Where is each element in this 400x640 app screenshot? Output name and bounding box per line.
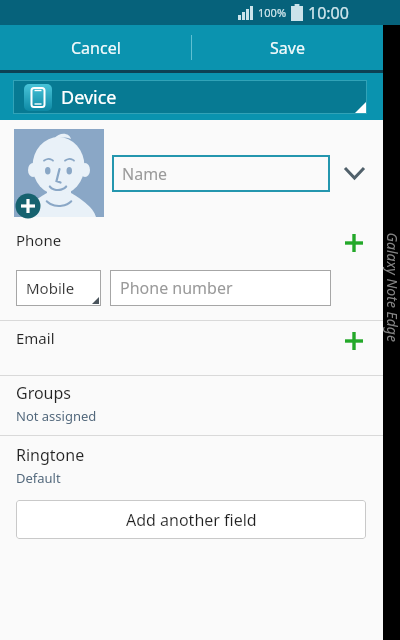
staticText: 100% xyxy=(258,5,287,20)
staticText: Phone number xyxy=(120,277,233,299)
button[interactable]: Add another field xyxy=(16,500,366,539)
staticText: Save xyxy=(270,37,305,59)
button[interactable] xyxy=(344,331,364,351)
staticText: Add another field xyxy=(126,509,257,531)
staticText: Cancel xyxy=(71,37,121,59)
staticText: Not assigned xyxy=(16,407,97,425)
staticText: Groups xyxy=(16,382,72,404)
staticText: Galaxy Note Edge xyxy=(382,232,400,432)
button[interactable]: Ringtone xyxy=(16,444,383,487)
button[interactable] xyxy=(344,167,365,179)
staticText: Device xyxy=(61,85,117,110)
staticText: Ringtone xyxy=(16,444,85,466)
button[interactable]: Groups xyxy=(16,382,383,425)
button[interactable]: Phone number xyxy=(110,270,331,306)
button[interactable]: Device xyxy=(13,80,367,114)
staticText: 10:00 xyxy=(308,2,349,24)
staticText: Name xyxy=(122,163,168,185)
button[interactable]: Cancel xyxy=(0,25,191,70)
staticText: Email xyxy=(16,328,344,348)
button[interactable] xyxy=(14,129,104,217)
button[interactable]: Email xyxy=(16,328,383,348)
button[interactable] xyxy=(344,233,364,253)
button[interactable]: Save xyxy=(192,25,383,70)
button[interactable]: Mobile xyxy=(16,270,101,306)
staticText: Default xyxy=(16,469,61,487)
staticText: Mobile xyxy=(26,278,75,298)
button[interactable]: Name xyxy=(112,155,330,192)
staticText: Phone xyxy=(16,230,344,250)
